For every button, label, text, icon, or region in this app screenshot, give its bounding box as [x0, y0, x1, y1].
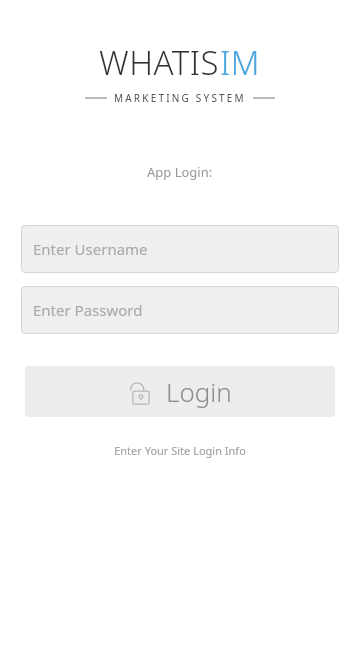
staticText: Login [166, 374, 232, 409]
staticText: WHATIS [99, 40, 220, 85]
button[interactable]: Login [25, 366, 335, 417]
staticText: App Login: [147, 163, 213, 181]
staticText: Enter Password [33, 300, 143, 320]
button[interactable]: Enter Username [21, 225, 339, 273]
staticText: MARKETING SYSTEM [114, 91, 246, 105]
staticText: Enter Your Site Login Info [114, 443, 246, 458]
staticText: Enter Username [33, 239, 148, 259]
staticText: IM [220, 40, 261, 85]
other: Login [128, 379, 150, 405]
button[interactable]: Enter Password [21, 286, 339, 334]
